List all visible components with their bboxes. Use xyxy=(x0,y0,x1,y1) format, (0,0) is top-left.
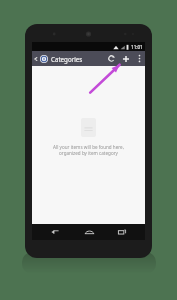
staticText: Categories xyxy=(51,55,83,63)
other: Navigate up xyxy=(34,57,38,61)
button[interactable]: More options xyxy=(133,51,145,66)
staticText: 11:01 xyxy=(131,44,143,50)
button[interactable]: Add category xyxy=(118,51,133,66)
button[interactable]: Navigate up xyxy=(32,51,87,66)
button[interactable]: Back xyxy=(44,224,66,240)
button[interactable]: Home xyxy=(78,224,100,240)
button[interactable]: Refresh xyxy=(104,51,118,66)
button[interactable]: Recent apps xyxy=(111,224,133,240)
staticText: All your items will be found here, organ… xyxy=(53,144,124,156)
